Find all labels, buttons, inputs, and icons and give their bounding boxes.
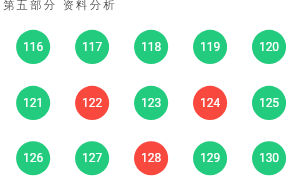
button[interactable]: 117 bbox=[75, 30, 109, 64]
staticText: 116 bbox=[23, 40, 44, 54]
staticText: 125 bbox=[258, 96, 279, 110]
button[interactable]: 122 bbox=[75, 86, 109, 120]
button[interactable]: 120 bbox=[252, 30, 286, 64]
staticText: 127 bbox=[82, 151, 103, 165]
staticText: 117 bbox=[82, 40, 103, 54]
staticText: 123 bbox=[141, 96, 162, 110]
staticText: 122 bbox=[82, 96, 103, 110]
button[interactable]: 128 bbox=[134, 141, 168, 175]
button[interactable]: 129 bbox=[193, 141, 227, 175]
staticText: 126 bbox=[23, 151, 44, 165]
button[interactable]: 119 bbox=[193, 30, 227, 64]
button[interactable]: 125 bbox=[252, 86, 286, 120]
button[interactable]: 121 bbox=[16, 86, 50, 120]
staticText: 121 bbox=[23, 96, 44, 110]
button[interactable]: 116 bbox=[16, 30, 50, 64]
staticText: 118 bbox=[141, 40, 162, 54]
staticText: 119 bbox=[199, 40, 220, 54]
button[interactable]: 123 bbox=[134, 86, 168, 120]
button[interactable]: 126 bbox=[16, 141, 50, 175]
button[interactable]: 124 bbox=[193, 86, 227, 120]
staticText: 128 bbox=[141, 151, 162, 165]
staticText: 120 bbox=[258, 40, 279, 54]
staticText: 124 bbox=[199, 96, 220, 110]
staticText: 129 bbox=[199, 151, 220, 165]
button[interactable]: 130 bbox=[252, 141, 286, 175]
staticText: 第五部分 资料分析 bbox=[3, 0, 118, 12]
staticText: 130 bbox=[258, 151, 279, 165]
button[interactable]: 127 bbox=[75, 141, 109, 175]
button[interactable]: 118 bbox=[134, 30, 168, 64]
